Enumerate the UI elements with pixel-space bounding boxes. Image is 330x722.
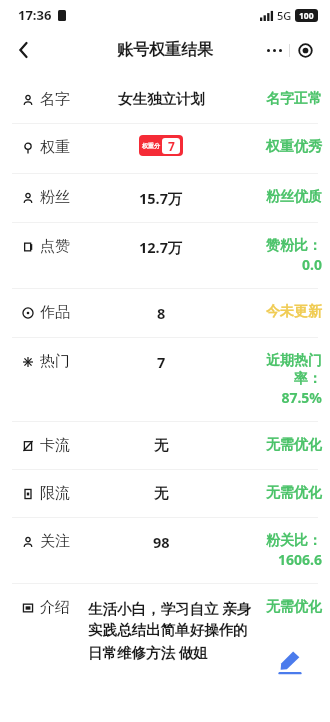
staticText: 权重优秀 [266, 138, 322, 156]
staticText: 权重分 [142, 142, 160, 150]
button[interactable]: Target [290, 37, 320, 63]
button[interactable]: Back [8, 34, 40, 66]
staticText: 近期热门 [266, 352, 322, 370]
staticText: 5G [277, 8, 292, 23]
staticText: 17:36 [18, 6, 52, 24]
staticText: 限流 [40, 484, 70, 503]
staticText: 15.7万 [139, 188, 183, 208]
staticText: 8 [157, 303, 166, 323]
staticText: 无 [154, 484, 169, 502]
staticText: 名字正常 [266, 90, 322, 108]
staticText: 无需优化 [266, 436, 322, 454]
staticText: 权重 [40, 138, 70, 157]
staticText: 点赞 [40, 237, 70, 256]
staticText: 生活小白，学习自立 亲身实践总结出简单好操作的日常维修方法 做姐 [88, 598, 252, 663]
staticText: 作品 [40, 303, 70, 322]
button[interactable]: 作品 [0, 289, 330, 337]
staticText: 女生独立计划 [118, 90, 205, 108]
staticText: 账号权重结果 [117, 40, 213, 60]
button[interactable]: 权重 [0, 124, 330, 173]
staticText: 粉丝 [40, 188, 70, 207]
button[interactable]: 卡流 [0, 422, 330, 469]
staticText: 1606.6 [278, 550, 322, 569]
button[interactable]: Edit [266, 638, 314, 686]
button[interactable]: 热门 [0, 338, 330, 421]
staticText: 无需优化 [266, 598, 322, 616]
staticText: 粉关比： [266, 532, 322, 550]
staticText: 赞粉比： [266, 237, 322, 255]
staticText: 介绍 [40, 598, 70, 617]
button[interactable]: 名字 [0, 76, 330, 123]
button[interactable]: 介绍 [0, 584, 330, 663]
staticText: 7 [157, 352, 166, 372]
staticText: 无 [154, 436, 169, 454]
staticText: 今未更新 [266, 303, 322, 321]
button[interactable]: More [259, 37, 289, 63]
button[interactable]: 点赞 [0, 223, 330, 288]
button[interactable]: 关注 [0, 518, 330, 583]
staticText: 关注 [40, 532, 70, 551]
staticText: 98 [153, 532, 170, 552]
staticText: 100 [299, 10, 314, 22]
staticText: 87.5% [281, 388, 322, 407]
staticText: 率： [294, 370, 322, 388]
staticText: 0.0 [302, 255, 322, 274]
staticText: 7 [168, 138, 175, 154]
staticText: 热门 [40, 352, 70, 371]
button[interactable]: 粉丝 [0, 174, 330, 222]
staticText: 粉丝优质 [266, 188, 322, 206]
button[interactable]: 限流 [0, 470, 330, 517]
staticText: 无需优化 [266, 484, 322, 502]
staticText: 卡流 [40, 436, 70, 455]
staticText: 12.7万 [139, 237, 183, 257]
staticText: 名字 [40, 90, 70, 109]
